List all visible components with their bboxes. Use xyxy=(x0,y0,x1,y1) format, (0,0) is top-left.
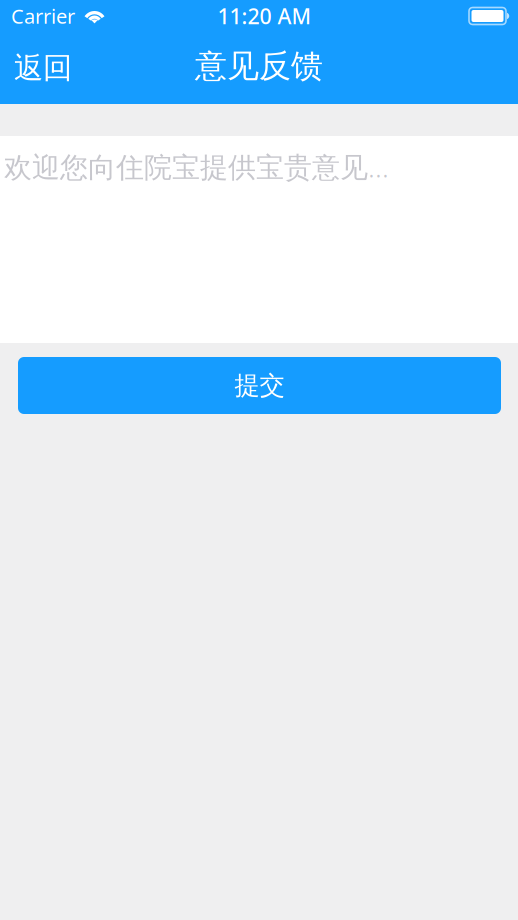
button[interactable]: 欢迎您向住院宝提供宝贵意见... xyxy=(0,136,518,343)
button[interactable]: 提交 xyxy=(18,357,501,414)
staticText: 提交 xyxy=(234,370,284,401)
button[interactable]: 返回 xyxy=(0,40,86,96)
staticText: 意见反馈 xyxy=(195,46,323,86)
staticText: 11:20 AM xyxy=(217,2,311,30)
staticText: 返回 xyxy=(14,50,72,86)
staticText: 欢迎您向住院宝提供宝贵意见... xyxy=(4,148,389,185)
staticText: Carrier xyxy=(11,3,75,29)
